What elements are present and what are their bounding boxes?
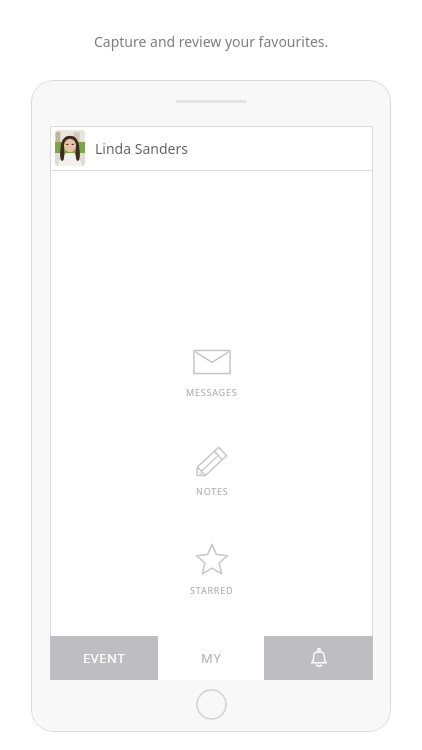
staticText: Linda Sanders (95, 139, 188, 158)
staticText: NOTES (196, 485, 229, 497)
button[interactable]: NOTES (179, 442, 245, 499)
button[interactable]: MY (158, 636, 264, 680)
button[interactable]: MESSAGES (172, 343, 252, 400)
staticText: EVENT (83, 649, 126, 667)
staticText: MESSAGES (186, 386, 238, 398)
staticText: Capture and review your favourites. (94, 32, 329, 51)
staticText: MY (201, 649, 222, 667)
staticText: STARRED (190, 584, 234, 596)
button[interactable]: Linda Sanders (50, 126, 373, 170)
button[interactable]: STARRED (176, 541, 248, 598)
button[interactable]: Home (196, 689, 227, 720)
button[interactable]: EVENT (50, 636, 158, 680)
button[interactable]: Notifications (264, 636, 373, 680)
